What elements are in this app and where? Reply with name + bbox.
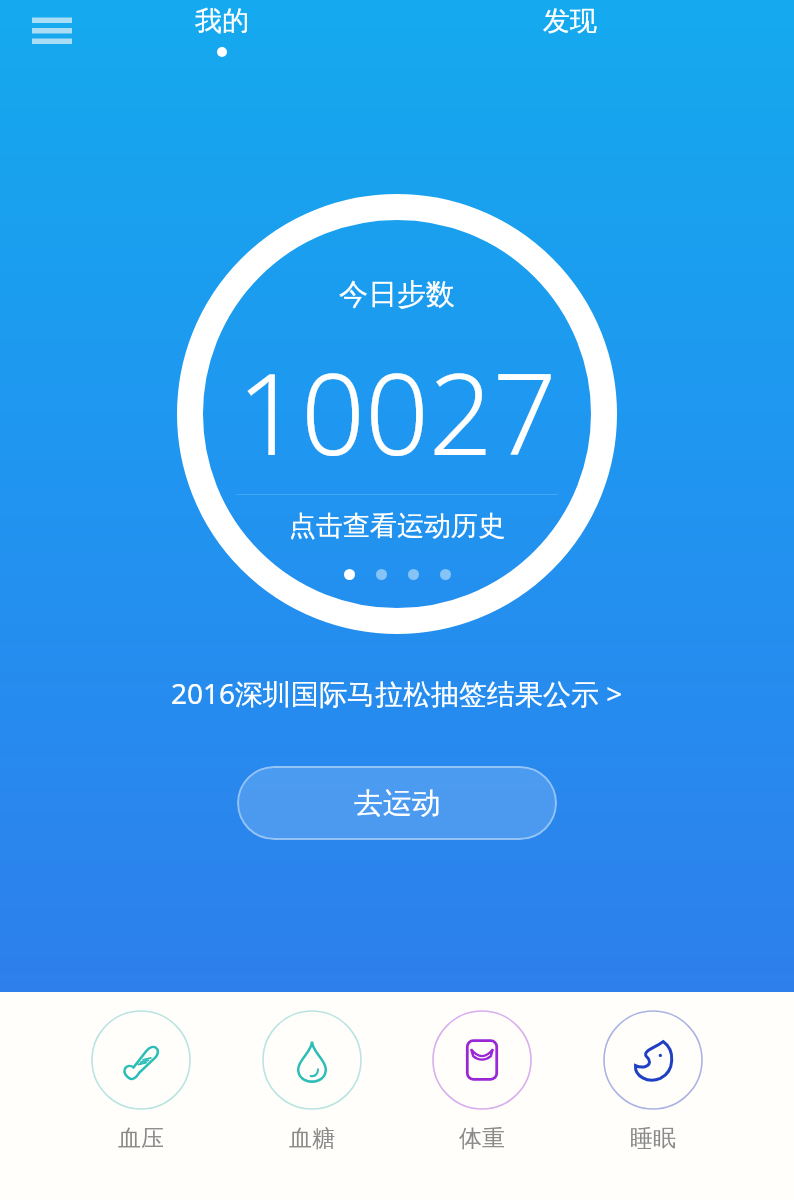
staticText: 血糖 <box>289 1124 335 1153</box>
button[interactable]: 发现 <box>526 4 614 38</box>
staticText: 睡眠 <box>630 1124 676 1153</box>
button[interactable]: 血糖 <box>257 1010 367 1153</box>
staticText: 去运动 <box>354 785 441 822</box>
staticText: 体重 <box>459 1124 505 1153</box>
staticText: 血压 <box>118 1124 164 1153</box>
staticText: 发现 <box>543 4 597 38</box>
button[interactable]: Menu <box>22 8 82 56</box>
button[interactable]: 今日步数 <box>177 194 617 634</box>
button[interactable]: 体重 <box>427 1010 537 1153</box>
button[interactable]: 去运动 <box>237 766 557 840</box>
button[interactable]: 我的 <box>178 4 266 57</box>
staticText: 10027 <box>237 335 557 488</box>
staticText: 点击查看运动历史 <box>289 509 505 543</box>
staticText: 2016深圳国际马拉松抽签结果公示 > <box>171 674 623 712</box>
button[interactable]: 2016深圳国际马拉松抽签结果公示 > <box>161 670 633 716</box>
button[interactable]: 睡眠 <box>598 1010 708 1153</box>
button[interactable]: 血压 <box>86 1010 196 1153</box>
staticText: 今日步数 <box>339 276 455 313</box>
staticText: 我的 <box>195 4 249 38</box>
